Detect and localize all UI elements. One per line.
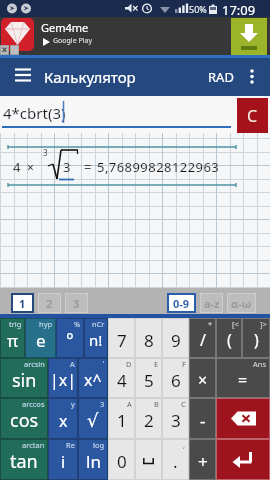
staticText: 50%	[189, 3, 207, 15]
button[interactable]: ˈ	[78, 358, 108, 398]
staticText: -	[200, 409, 206, 432]
staticText: Ans	[253, 359, 267, 369]
button[interactable]: 0-9	[167, 293, 196, 313]
staticText: √	[87, 410, 99, 431]
button[interactable]: arccos	[0, 398, 48, 439]
button[interactable]: y	[48, 398, 78, 439]
staticText: 4*cbrt(3)	[3, 103, 66, 123]
staticText: x^	[84, 369, 102, 391]
staticText: ln	[86, 450, 101, 473]
button[interactable]: 3	[65, 293, 88, 313]
button[interactable]: A	[108, 398, 135, 439]
button[interactable]: C	[162, 398, 189, 439]
staticText: sin	[12, 368, 37, 393]
button[interactable]: +	[189, 439, 216, 480]
button[interactable]: Re	[48, 439, 78, 480]
staticText: D	[126, 359, 132, 369]
staticText: n!	[89, 330, 103, 350]
button[interactable]: -	[189, 398, 216, 439]
button[interactable]	[240, 63, 266, 91]
button[interactable]	[135, 439, 162, 480]
staticText: .	[173, 450, 178, 473]
button[interactable]: Ans	[216, 358, 270, 398]
button[interactable]: [<	[216, 318, 242, 358]
staticText: Google Play	[53, 36, 92, 46]
staticText: cos	[10, 408, 39, 433]
button[interactable]: E	[135, 358, 162, 398]
button[interactable]	[216, 439, 270, 480]
button[interactable]: trig	[0, 318, 25, 358]
button[interactable]: 7	[108, 318, 135, 358]
button[interactable]: B	[135, 398, 162, 439]
button[interactable]: arctan	[0, 439, 48, 480]
button[interactable]: A	[48, 358, 78, 398]
staticText: ×	[27, 159, 34, 175]
button[interactable]: ,	[162, 439, 189, 480]
staticText: hyp	[39, 319, 53, 329]
staticText: 3	[43, 147, 48, 158]
staticText: C	[247, 105, 258, 127]
button[interactable]: a-z	[200, 293, 223, 313]
staticText: a-z	[204, 296, 220, 311]
staticText: B	[154, 399, 159, 409]
staticText: y	[71, 399, 75, 409]
button[interactable]: ]>	[242, 318, 270, 358]
button[interactable]: nCr	[84, 318, 108, 358]
button[interactable]	[231, 18, 267, 56]
staticText: i	[61, 451, 66, 473]
button[interactable]: 3	[78, 398, 108, 439]
staticText: 3	[63, 158, 71, 176]
button[interactable]: %	[56, 318, 84, 358]
staticText: 1	[117, 409, 127, 432]
button[interactable]: 9	[162, 318, 189, 358]
button[interactable]: hyp	[25, 318, 56, 358]
staticText: arctan	[22, 440, 45, 450]
staticText: C	[181, 399, 186, 409]
button[interactable]: F	[162, 358, 189, 398]
button[interactable]: 8	[135, 318, 162, 358]
button[interactable]: 0	[108, 439, 135, 480]
button[interactable]: α-ω	[227, 293, 256, 313]
button[interactable]: ×	[189, 358, 216, 398]
button[interactable]: arcsin	[0, 358, 48, 398]
staticText: π	[7, 329, 19, 352]
button[interactable]: RAD	[200, 66, 242, 88]
button[interactable]	[8, 63, 40, 91]
button[interactable]: *	[189, 318, 216, 358]
staticText: +	[198, 450, 208, 473]
staticText: |x|	[50, 369, 77, 391]
staticText: /	[200, 329, 206, 351]
staticText: =	[84, 158, 92, 176]
button[interactable]: 1	[11, 293, 34, 313]
staticText: 4	[13, 158, 21, 176]
staticText: 5,76899828122963	[97, 158, 220, 176]
staticText: α-ω	[231, 296, 252, 311]
button[interactable]	[216, 398, 270, 439]
staticText: 7	[117, 329, 127, 352]
staticText: =	[238, 369, 248, 391]
staticText: A	[127, 399, 132, 409]
button[interactable]: D	[108, 358, 135, 398]
button[interactable]: log	[78, 439, 108, 480]
button[interactable]: 2	[38, 293, 61, 313]
staticText: 3	[100, 399, 105, 409]
staticText: ]>	[260, 319, 267, 329]
staticText: 5	[144, 369, 154, 392]
staticText: 1	[19, 296, 26, 311]
staticText: trig	[9, 319, 22, 329]
staticText: nCr	[92, 319, 105, 329]
staticText: 0-9	[173, 296, 190, 311]
button[interactable]: C	[237, 98, 268, 133]
staticText: log	[93, 440, 105, 450]
staticText: ,	[183, 440, 186, 450]
staticText: Gem4me	[41, 20, 89, 35]
staticText: 8	[144, 329, 154, 352]
staticText: [<	[232, 319, 239, 329]
staticText: 2	[46, 296, 53, 311]
staticText: 17:09	[222, 1, 256, 18]
staticText: ˈ	[103, 359, 105, 369]
staticText: arccos	[22, 399, 45, 409]
staticText: x	[59, 410, 68, 432]
staticText: E	[154, 359, 159, 369]
staticText: 4	[117, 369, 127, 392]
